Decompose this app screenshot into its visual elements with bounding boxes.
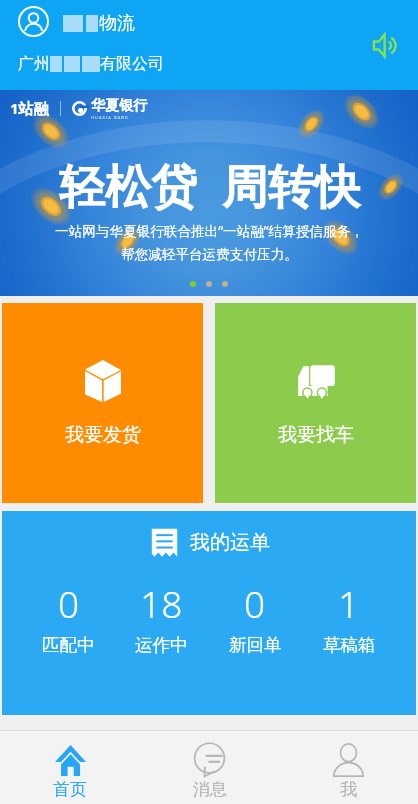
button[interactable]: 我要找车 (215, 303, 416, 503)
staticText: 我的运单 (190, 530, 270, 555)
staticText: 我 (340, 779, 357, 800)
staticText: 我要找车 (278, 423, 354, 447)
staticText: 有限公司 (100, 54, 164, 74)
staticText: 我要发货 (65, 423, 141, 447)
staticText: 消息 (193, 779, 227, 800)
button[interactable]: 18 (115, 576, 208, 658)
staticText: H U A X I A B A N K (91, 115, 128, 120)
staticText: 华夏银行 (91, 97, 147, 115)
staticText: 运作中 (135, 634, 188, 656)
button[interactable]: 0 (208, 576, 302, 658)
button[interactable]: Announcements (366, 26, 404, 64)
staticText: 18 (140, 578, 183, 628)
staticText: 一站网与华夏银行联合推出“一站融”结算授信服务， (55, 221, 364, 240)
staticText: 0 (58, 578, 80, 628)
button[interactable]: 0 (22, 576, 115, 658)
staticText: 首页 (53, 779, 87, 800)
staticText: 匹配中 (42, 634, 95, 656)
button[interactable]: 首页 (0, 731, 140, 804)
staticText: 0 (244, 578, 266, 628)
button[interactable]: 消息 (140, 731, 279, 804)
staticText: 周转快 (222, 159, 360, 217)
staticText: 物流 (99, 12, 135, 35)
staticText: 广州 (18, 54, 50, 74)
staticText: 1站融 (10, 98, 49, 118)
staticText: 轻松贷 (59, 159, 197, 217)
staticText: 草稿箱 (323, 634, 376, 656)
staticText: 帮您减轻平台运费支付压力。 (121, 246, 298, 263)
button[interactable]: 我要发货 (2, 303, 203, 503)
staticText: 新回单 (229, 634, 282, 656)
button[interactable]: 1 (302, 576, 396, 658)
button[interactable]: 我 (279, 731, 418, 804)
staticText: 1 (338, 578, 360, 628)
